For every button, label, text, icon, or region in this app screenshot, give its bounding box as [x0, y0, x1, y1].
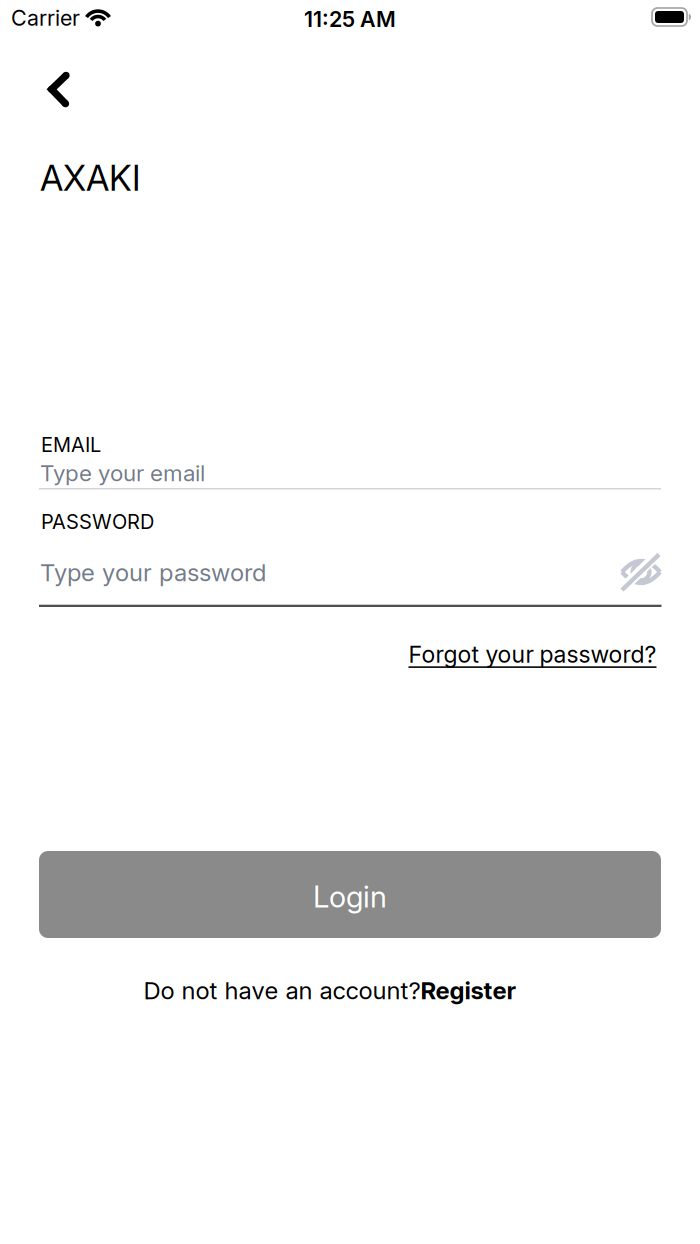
staticText: Register — [420, 976, 516, 1005]
staticText: Do not have an account? — [143, 976, 420, 1005]
staticText: EMAIL — [41, 433, 101, 457]
staticText: Type your password — [40, 558, 266, 587]
staticText: Carrier — [11, 5, 80, 31]
staticText: Type your email — [40, 459, 205, 487]
staticText: AXAKI — [40, 157, 141, 199]
staticText: PASSWORD — [41, 510, 154, 534]
button[interactable]: Back — [36, 60, 82, 120]
staticText: Forgot your password? — [408, 640, 656, 668]
button[interactable]: Login — [39, 851, 661, 938]
button[interactable]: Register — [420, 976, 516, 1005]
button[interactable]: Forgot your password? — [408, 640, 656, 668]
staticText: 11:25 AM — [304, 6, 396, 32]
button[interactable]: Show password — [620, 553, 662, 591]
staticText: Login — [313, 879, 387, 915]
